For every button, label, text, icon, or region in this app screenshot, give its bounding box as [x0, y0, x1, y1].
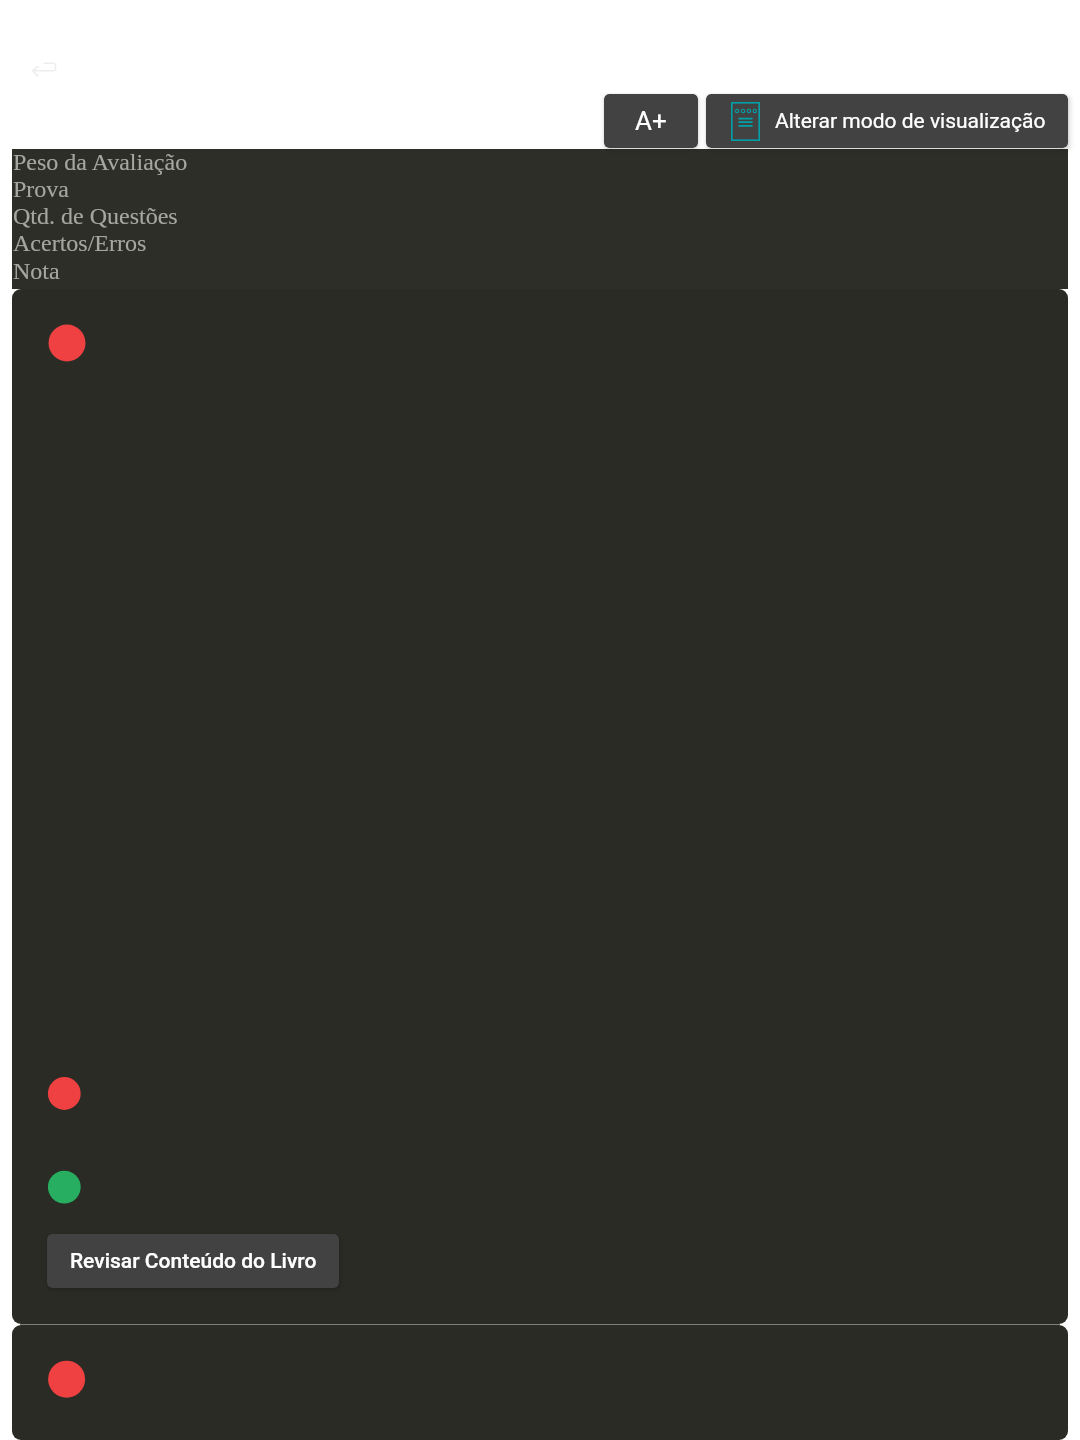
staticText: Acertos/Erros: [13, 230, 147, 257]
staticText: Revisar Conteúdo do Livro: [70, 1249, 317, 1274]
staticText: Nota: [13, 258, 60, 285]
button[interactable]: [12, 1325, 1068, 1440]
button[interactable]: Revisar Conteúdo do Livro: [12, 289, 1068, 1324]
staticText: Qtd. de Questões: [13, 203, 178, 230]
staticText: Alterar modo de visualização: [775, 109, 1046, 134]
staticText: Peso da Avaliação: [13, 149, 188, 176]
staticText: Prova: [13, 176, 69, 203]
staticText: A+: [635, 106, 667, 136]
button[interactable]: A+: [604, 94, 698, 148]
button[interactable]: Revisar Conteúdo do Livro: [47, 1234, 339, 1288]
button[interactable]: Alterar modo de visualização: [706, 94, 1068, 148]
